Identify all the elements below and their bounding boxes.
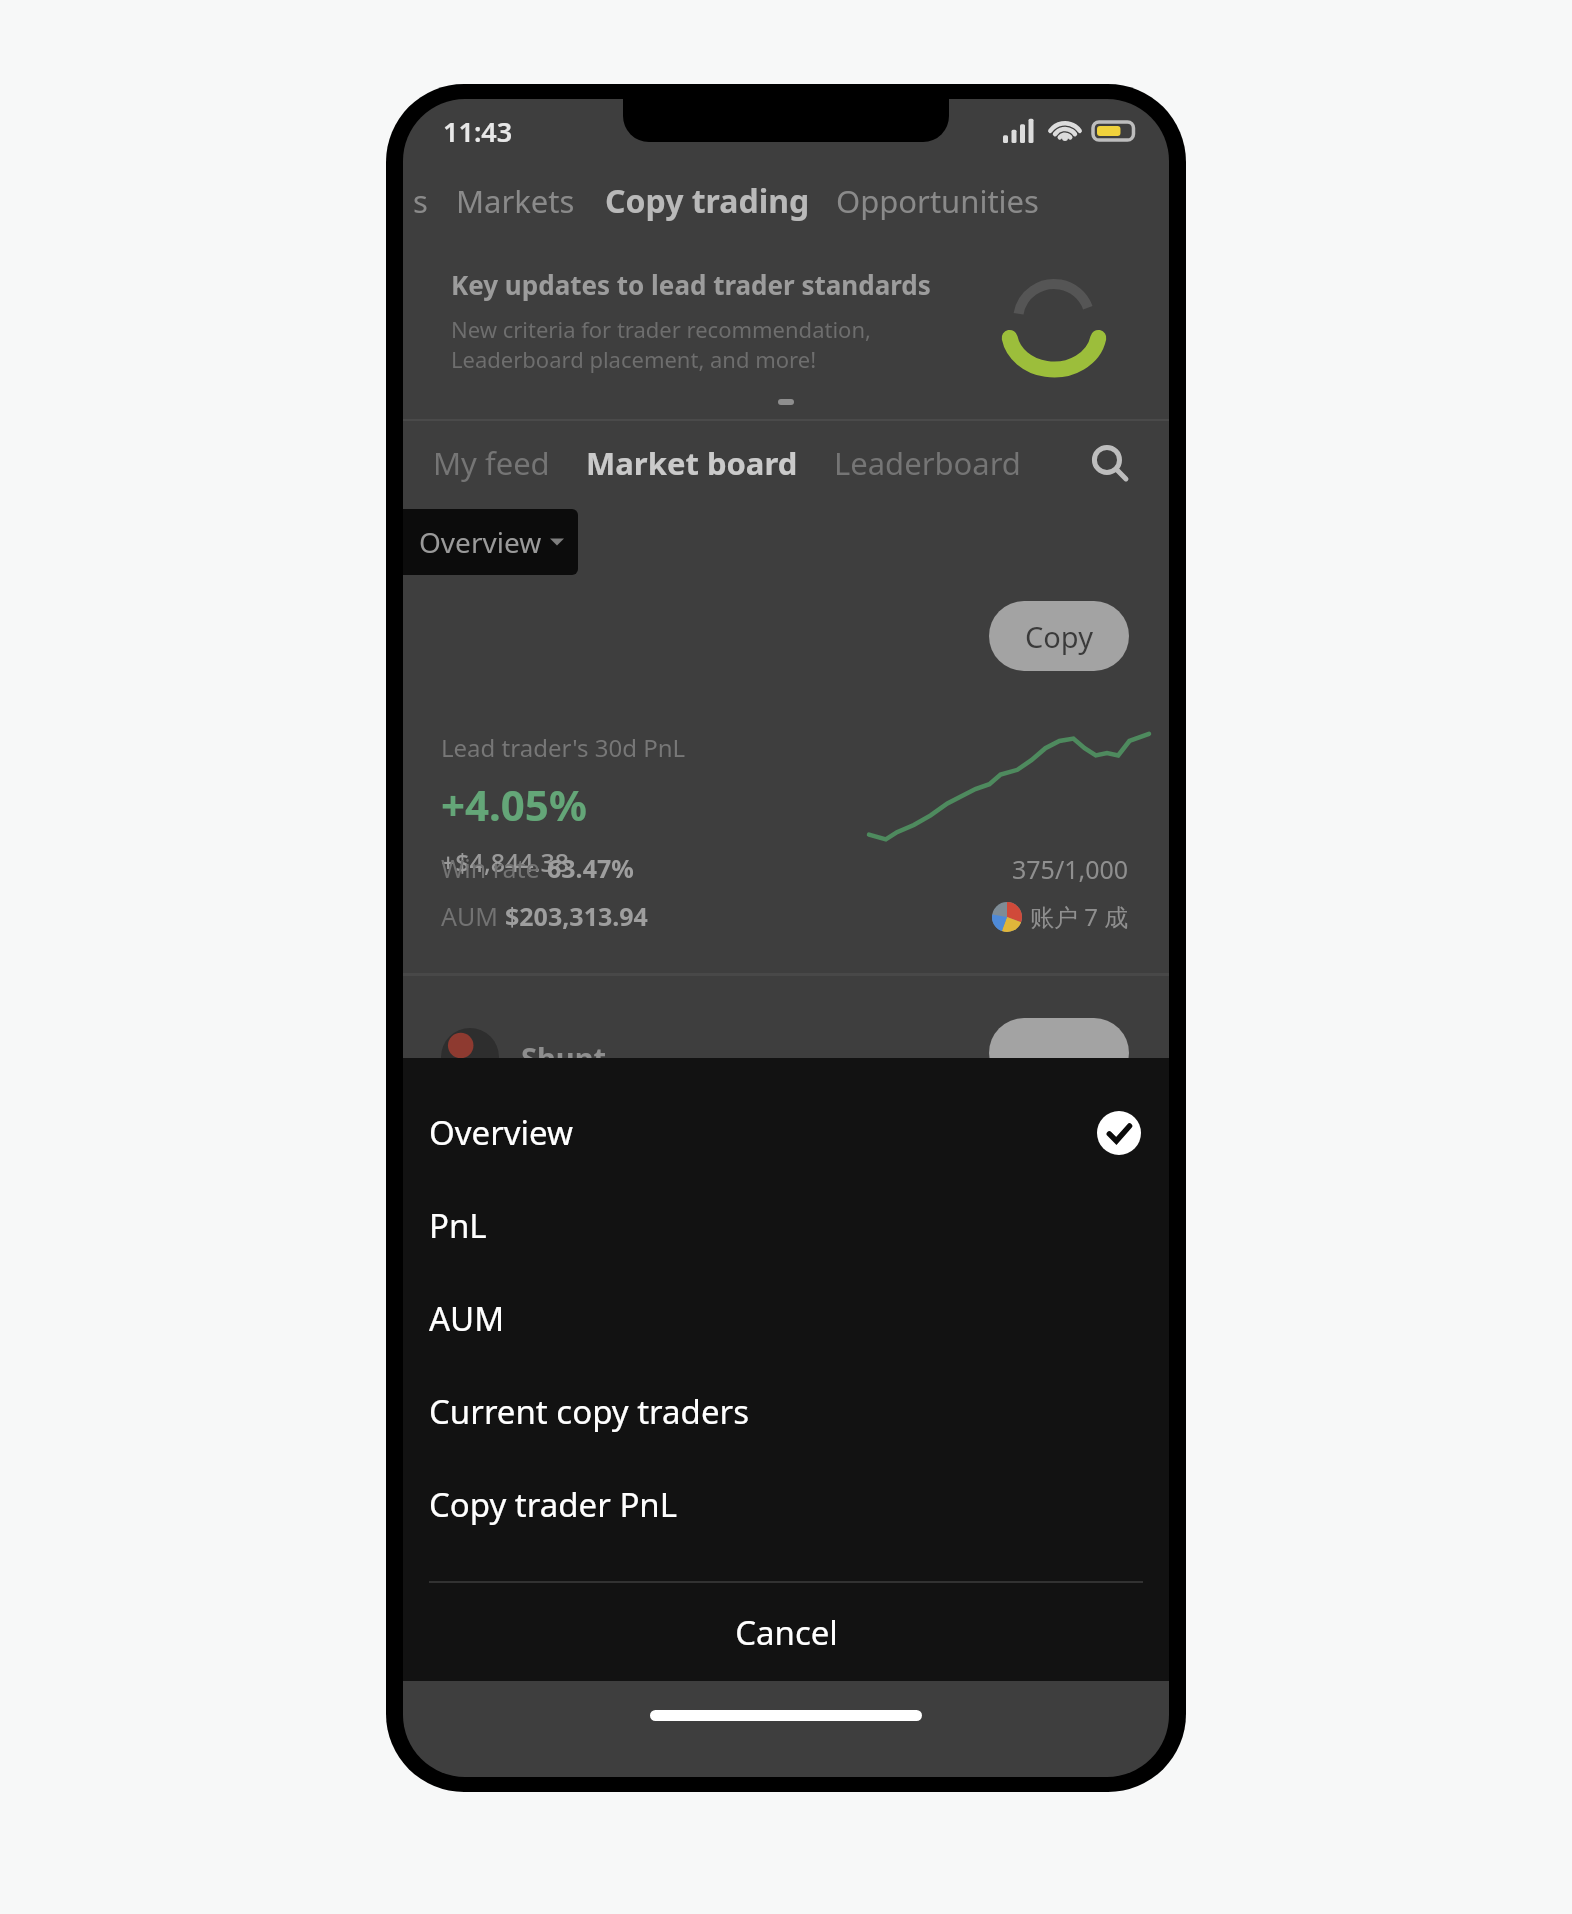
staticText: PnL [429, 1203, 487, 1248]
staticText: Lead trader's 30d PnL [441, 731, 686, 764]
other: Selected [1097, 1111, 1141, 1155]
button[interactable]: Copy trader PnL [403, 1458, 1169, 1551]
staticText: Win rate [441, 851, 547, 885]
staticText: AUM [441, 899, 505, 933]
button[interactable]: Cancel [403, 1583, 1169, 1681]
staticText: 63.47% [547, 851, 634, 885]
staticText: AUM [429, 1296, 505, 1341]
button[interactable]: Opportunities [836, 180, 1039, 222]
staticText: 账户 7 成 [1030, 900, 1129, 933]
button[interactable]: AUM [403, 1272, 1169, 1365]
button[interactable]: s [413, 180, 428, 222]
staticText: New criteria for trader recommendation, [451, 314, 871, 344]
staticText: Copy trader PnL [429, 1482, 678, 1527]
staticText: $203,313.94 [505, 899, 648, 933]
button[interactable]: Copy trading [605, 179, 810, 223]
staticText: 375/1,000 [1012, 852, 1129, 886]
button[interactable]: Overview [403, 1086, 1169, 1179]
staticText: +$4,844.38 [441, 845, 570, 879]
button[interactable]: Market board [586, 442, 798, 484]
button[interactable]: Leaderboard [834, 442, 1021, 484]
staticText: Leaderboard placement, and more! [451, 344, 817, 374]
button[interactable]: Search [1085, 438, 1135, 488]
button[interactable]: My feed [433, 442, 550, 484]
button[interactable]: PnL [403, 1179, 1169, 1272]
staticText: Shunt [521, 1038, 607, 1077]
staticText: +4.05% [441, 776, 587, 833]
staticText: Overview [429, 1110, 573, 1155]
button[interactable]: Copy [989, 601, 1129, 671]
staticText: 11:43 [443, 113, 513, 150]
button[interactable]: Markets [456, 180, 575, 222]
staticText: Overview [419, 523, 542, 561]
button[interactable]: Current copy traders [403, 1365, 1169, 1458]
staticText: Key updates to lead trader standards [451, 267, 931, 302]
button[interactable]: Overview [403, 509, 578, 575]
staticText: Copy [1025, 617, 1093, 656]
staticText: Current copy traders [429, 1389, 749, 1434]
staticText: Cancel [735, 1610, 838, 1655]
